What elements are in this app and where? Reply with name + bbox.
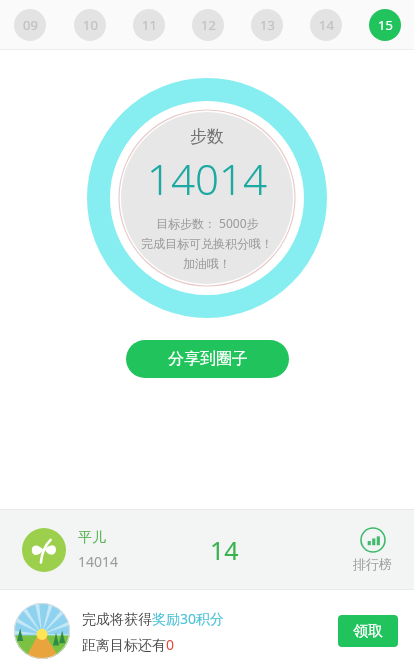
button[interactable]: 分享到圈子: [126, 340, 289, 378]
button[interactable]: 15: [369, 9, 401, 41]
staticText: 14: [319, 16, 334, 34]
staticText: 分享到圈子: [168, 349, 248, 369]
staticText: 加油哦！: [183, 256, 231, 271]
staticText: 14014: [78, 552, 119, 571]
staticText: 13: [260, 16, 275, 34]
button[interactable]: 10: [74, 9, 106, 41]
button[interactable]: 09: [14, 9, 46, 41]
button[interactable]: 领取: [338, 615, 398, 647]
staticText: 完成目标可兑换积分哦！: [141, 236, 273, 251]
other: Avatar: [22, 528, 66, 572]
staticText: 10: [83, 16, 98, 34]
staticText: 11: [142, 16, 157, 34]
staticText: 14014: [147, 150, 267, 207]
staticText: 14: [210, 533, 239, 567]
staticText: 目标步数： 5000步: [156, 215, 259, 231]
button[interactable]: 14: [310, 9, 342, 41]
button[interactable]: 11: [133, 9, 165, 41]
staticText: 排行榜: [353, 556, 392, 572]
staticText: 距离目标还有0: [82, 635, 175, 654]
button[interactable]: Avatar: [22, 528, 66, 572]
staticText: 15: [378, 16, 393, 34]
button[interactable]: 12: [192, 9, 224, 41]
staticText: 09: [23, 16, 38, 34]
button[interactable]: 13: [251, 9, 283, 41]
other: Reward: [14, 603, 70, 659]
staticText: 完成将获得奖励30积分: [82, 609, 225, 628]
staticText: 领取: [353, 622, 383, 641]
staticText: 步数: [190, 126, 224, 147]
other: Leaderboard: [360, 527, 386, 553]
staticText: 平儿: [78, 529, 106, 547]
button[interactable]: Leaderboard: [349, 523, 396, 576]
staticText: 12: [201, 16, 216, 34]
